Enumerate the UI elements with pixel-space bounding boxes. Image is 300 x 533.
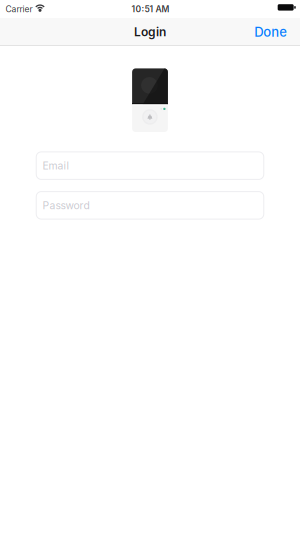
button[interactable]: Password bbox=[36, 192, 264, 219]
staticText: Password bbox=[42, 199, 89, 212]
button[interactable]: Email bbox=[36, 152, 264, 179]
staticText: Done bbox=[254, 24, 287, 40]
staticText: Carrier bbox=[6, 4, 33, 14]
button[interactable]: Done bbox=[247, 18, 294, 46]
staticText: 10:51 AM bbox=[131, 4, 169, 14]
staticText: Login bbox=[134, 25, 166, 39]
staticText: Email bbox=[42, 159, 69, 172]
